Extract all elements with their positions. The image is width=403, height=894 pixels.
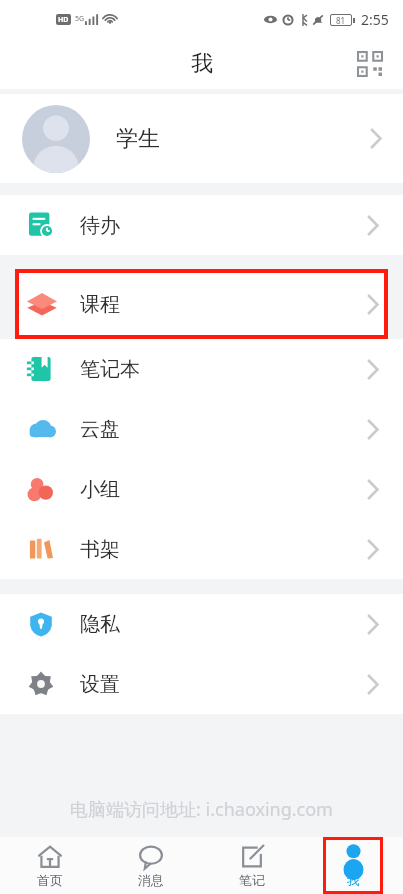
button[interactable]: 消息 <box>100 837 201 894</box>
staticText: 81 <box>336 15 346 26</box>
button[interactable]: 学生 <box>0 94 403 183</box>
staticText: 小组 <box>80 477 120 502</box>
button[interactable]: 我 <box>323 837 383 894</box>
button[interactable]: 小组 <box>0 459 403 519</box>
staticText: 2:55 <box>361 10 389 29</box>
staticText: 设置 <box>80 672 120 697</box>
staticText: 学生 <box>116 125 160 153</box>
button[interactable]: 笔记本 <box>0 339 403 399</box>
button[interactable]: 书架 <box>0 519 403 579</box>
button[interactable]: 设置 <box>0 654 403 714</box>
staticText: 消息 <box>138 872 164 888</box>
button[interactable]: 课程 <box>15 269 388 339</box>
staticText: 隐私 <box>80 612 120 637</box>
button[interactable]: 笔记 <box>201 837 302 894</box>
button[interactable]: 首页 <box>0 837 100 894</box>
staticText: 我 <box>347 872 360 888</box>
button[interactable]: 待办 <box>0 195 403 255</box>
staticText: 待办 <box>80 213 120 238</box>
staticText: 电脑端访问地址: i.chaoxing.com <box>70 797 333 822</box>
staticText: 笔记 <box>239 872 265 888</box>
staticText: 5G <box>75 14 85 24</box>
staticText: 首页 <box>37 872 63 888</box>
staticText: 课程 <box>80 292 120 317</box>
button[interactable]: 隐私 <box>0 594 403 654</box>
staticText: 我 <box>191 50 213 78</box>
button[interactable]: 扫一扫 <box>355 49 385 79</box>
staticText: 笔记本 <box>80 357 140 382</box>
staticText: 云盘 <box>80 417 120 442</box>
staticText: HD <box>58 15 69 25</box>
staticText: 书架 <box>80 537 120 562</box>
button[interactable]: 云盘 <box>0 399 403 459</box>
